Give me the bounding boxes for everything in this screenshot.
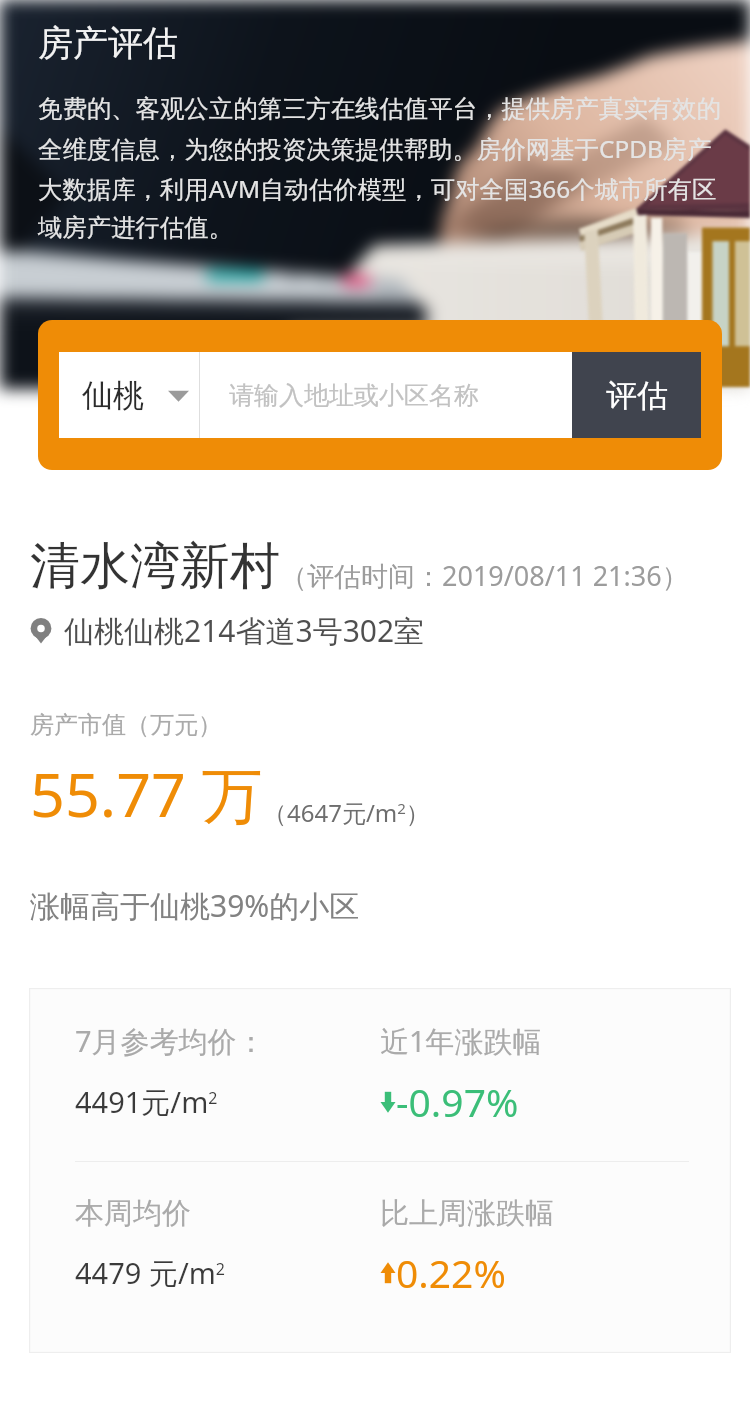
- staticText: 房产市值（万元）: [30, 710, 222, 740]
- staticText: 55.77 万: [30, 752, 263, 835]
- staticText: 仙桃仙桃214省道3号302室: [64, 610, 425, 651]
- staticText: 房产评估: [38, 21, 178, 65]
- staticText: 涨幅高于仙桃39%的小区: [30, 885, 360, 926]
- staticText: 本周均价: [75, 1195, 191, 1232]
- staticText: 清水湾新村: [30, 535, 280, 598]
- staticText: 请输入地址或小区名称: [229, 380, 479, 411]
- staticText: 免费的、客观公立的第三方在线估值平台，提供房产真实有效的全维度信息，为您的投资决…: [38, 94, 722, 243]
- staticText: 4491元/m2: [75, 1082, 218, 1122]
- button[interactable]: 仙桃: [59, 352, 199, 438]
- staticText: （4647元/m2）: [263, 796, 430, 829]
- staticText: -0.97%: [396, 1075, 519, 1128]
- staticText: （评估时间：2019/08/11 21:36）: [280, 557, 689, 594]
- staticText: 7月参考均价：: [75, 1021, 266, 1061]
- button[interactable]: 请输入地址或小区名称: [200, 352, 572, 438]
- staticText: 4479 元/m2: [75, 1253, 225, 1293]
- staticText: 近1年涨跌幅: [380, 1021, 542, 1061]
- button[interactable]: 评估: [572, 352, 701, 438]
- staticText: 比上周涨跌幅: [380, 1195, 554, 1232]
- staticText: 0.22%: [396, 1246, 506, 1299]
- staticText: 仙桃: [82, 376, 144, 415]
- staticText: 评估: [606, 376, 668, 415]
